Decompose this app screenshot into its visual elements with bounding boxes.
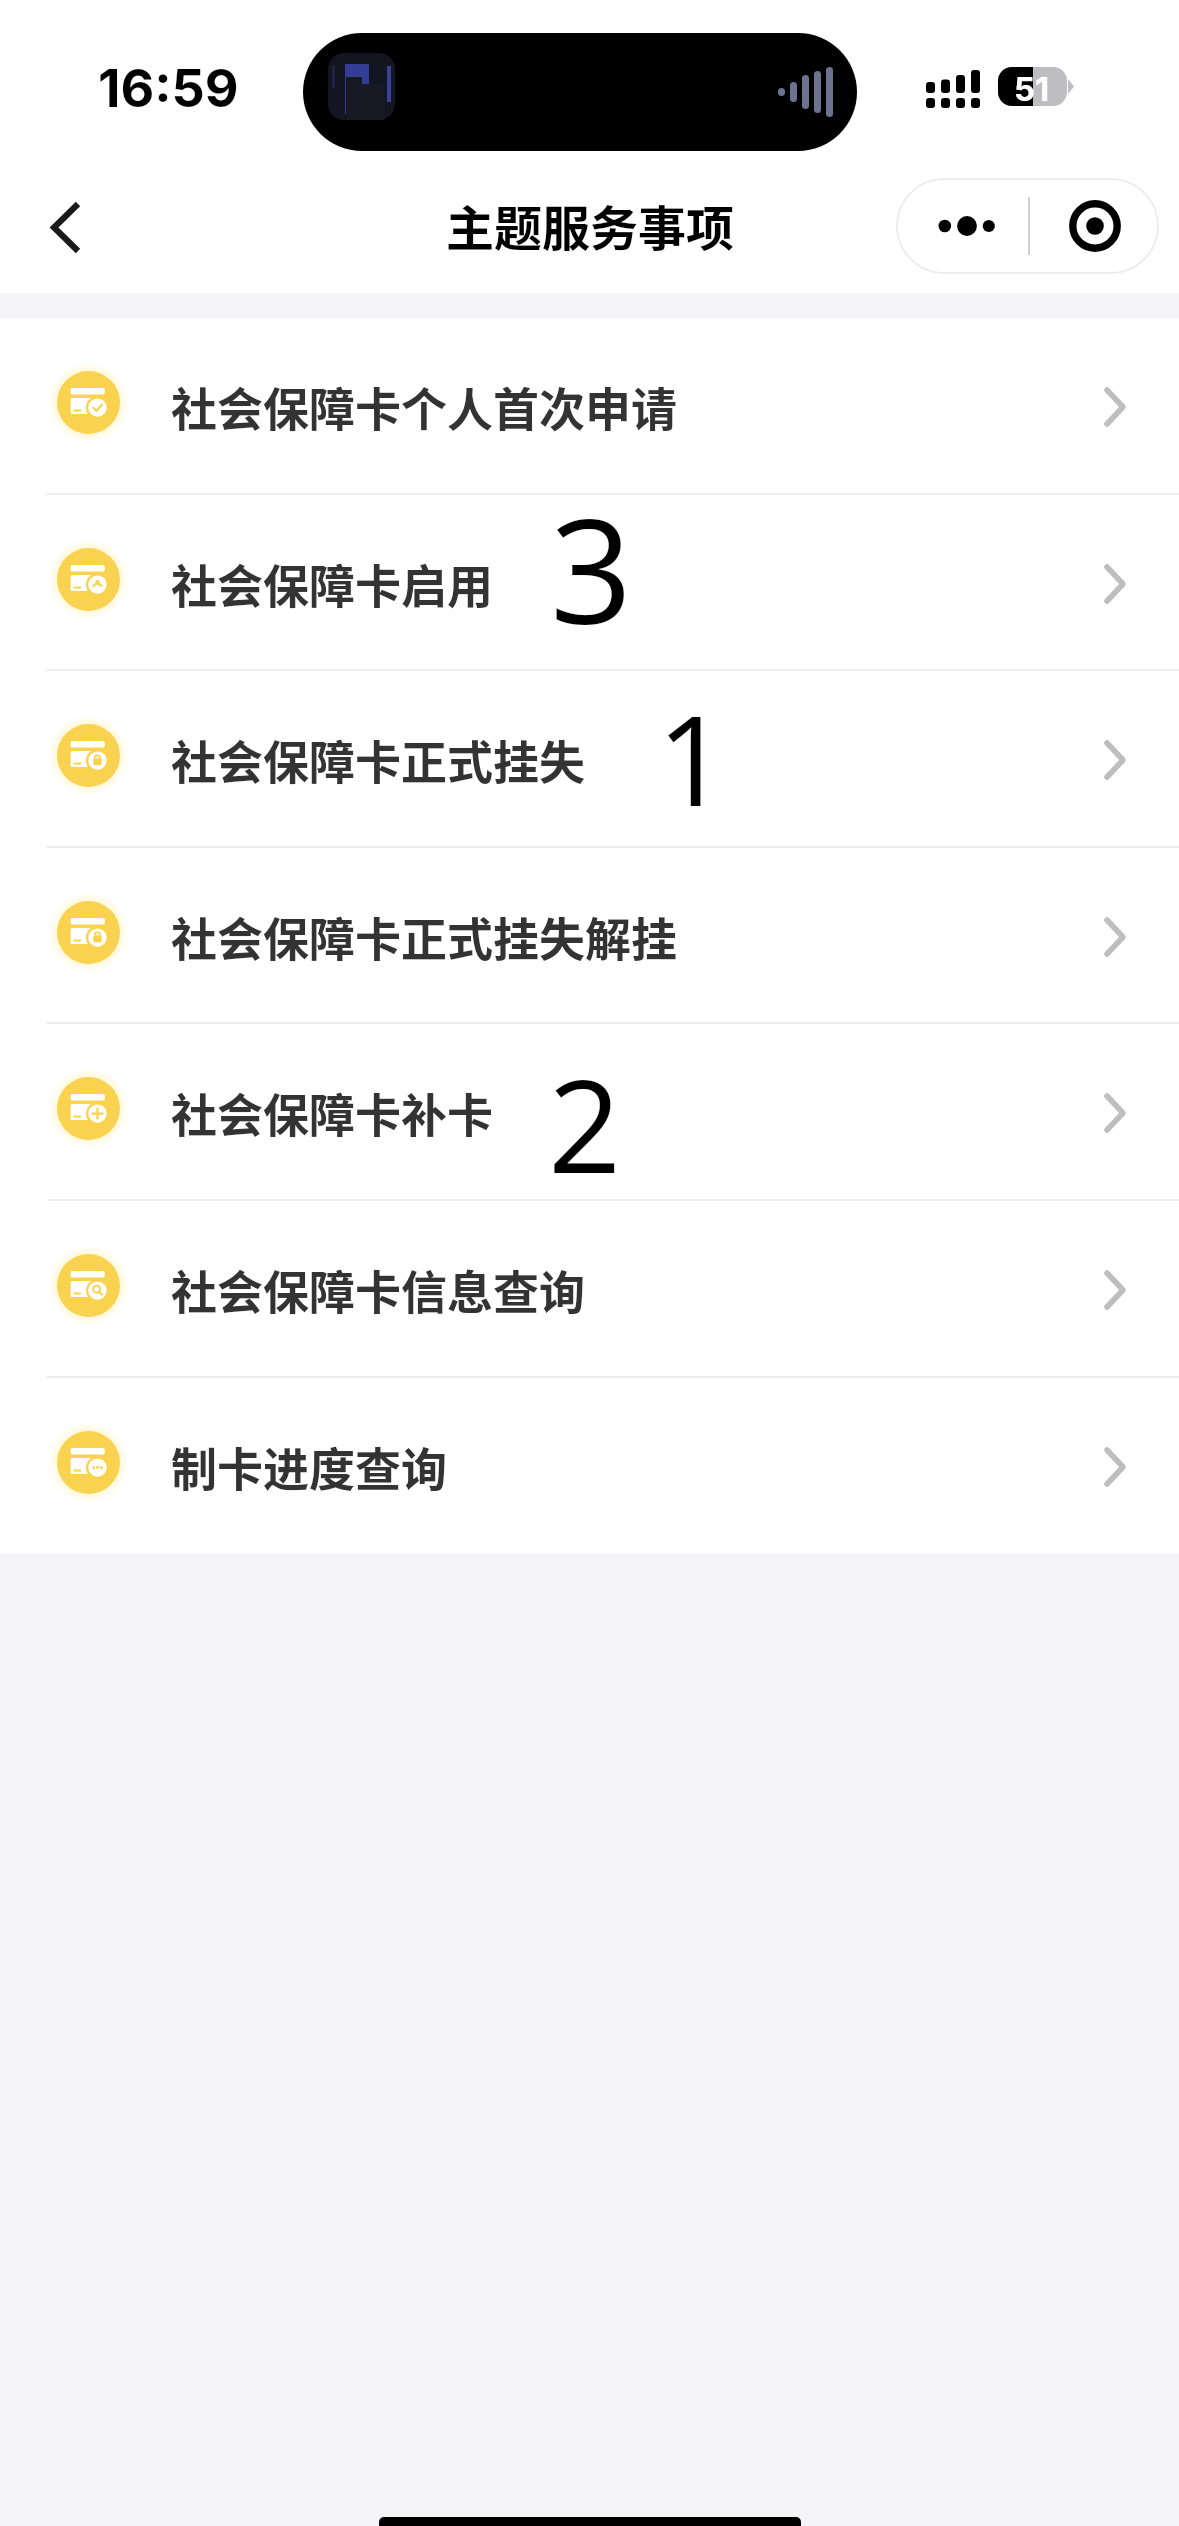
staticText: 社会保障卡启用 xyxy=(171,550,493,617)
staticText: 2 xyxy=(548,1036,622,1210)
button[interactable]: 社会保障卡启用 xyxy=(0,495,1179,672)
staticText: 社会保障卡个人首次申请 xyxy=(171,373,677,440)
staticText: 制卡进度查询 xyxy=(171,1433,447,1500)
staticText: 社会保障卡信息查询 xyxy=(171,1256,585,1323)
button[interactable]: 制卡进度查询 xyxy=(0,1378,1179,1555)
staticText: 社会保障卡补卡 xyxy=(171,1079,493,1146)
staticText: 主题服务事项 xyxy=(446,190,735,260)
button[interactable]: Close mini program xyxy=(1030,178,1159,274)
staticText: 3 xyxy=(550,470,633,666)
staticText: 社会保障卡正式挂失解挂 xyxy=(171,903,677,970)
button[interactable]: 社会保障卡正式挂失解挂 xyxy=(0,848,1179,1025)
button[interactable]: 社会保障卡个人首次申请 xyxy=(0,318,1179,495)
button[interactable]: 社会保障卡正式挂失 xyxy=(0,671,1179,848)
staticText: 社会保障卡正式挂失 xyxy=(171,726,585,793)
button[interactable]: Back xyxy=(20,180,112,276)
staticText: 51 xyxy=(1014,69,1050,109)
button[interactable]: More options xyxy=(896,178,1028,274)
staticText: 1 xyxy=(657,673,728,842)
staticText: 16:59 xyxy=(98,57,239,120)
button[interactable]: 社会保障卡信息查询 xyxy=(0,1201,1179,1378)
button[interactable]: 社会保障卡补卡 xyxy=(0,1024,1179,1201)
